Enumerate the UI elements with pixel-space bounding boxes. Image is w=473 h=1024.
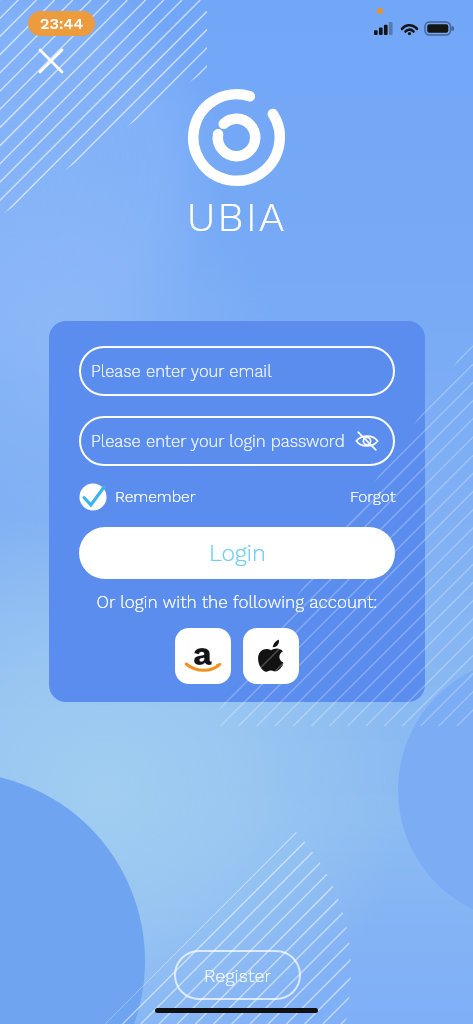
button[interactable]: Please enter your login password	[79, 416, 395, 466]
button[interactable]: Login with Amazon	[175, 628, 231, 684]
staticText: Remember	[115, 488, 196, 506]
button[interactable]: Close	[33, 43, 69, 79]
button[interactable]: Show password	[351, 425, 383, 457]
staticText: UBIA	[187, 193, 287, 241]
staticText: a	[193, 634, 213, 673]
button[interactable]: Remember	[78, 482, 196, 512]
button[interactable]: Register	[174, 950, 301, 1000]
button[interactable]: Please enter your email	[79, 346, 395, 396]
staticText: 23:44	[40, 14, 84, 33]
staticText: Please enter your login password	[91, 432, 345, 451]
staticText: Please enter your email	[91, 362, 272, 381]
button[interactable]: Login	[79, 527, 395, 579]
staticText: Login	[209, 540, 266, 567]
staticText: Or login with the following account:	[49, 592, 425, 612]
button[interactable]: Forgot	[350, 488, 396, 506]
button[interactable]: Login with Apple	[243, 628, 299, 684]
staticText: Register	[204, 965, 272, 986]
